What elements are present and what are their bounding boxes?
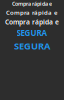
staticText: Compra rápida e [5,17,59,26]
staticText: Compra rápida e [6,8,58,16]
staticText: SEGURA [14,39,50,52]
staticText: Compra rápida e [12,0,52,7]
staticText: SEGURA [16,27,47,38]
